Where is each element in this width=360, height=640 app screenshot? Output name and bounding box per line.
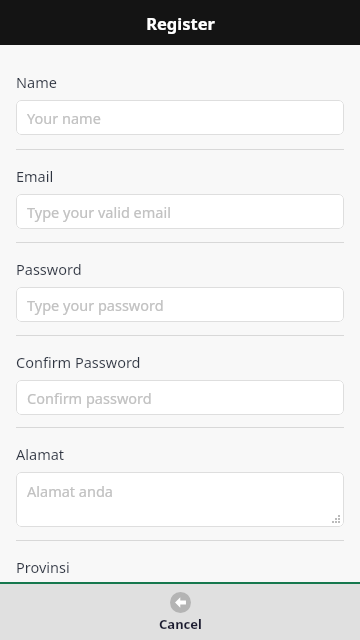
- button[interactable]: Your name: [16, 100, 344, 135]
- staticText: Password: [16, 259, 82, 279]
- staticText: Email: [16, 166, 54, 186]
- staticText: Name: [16, 72, 57, 92]
- staticText: Alamat anda: [27, 481, 113, 501]
- staticText: Alamat: [16, 444, 65, 464]
- staticText: Cancel: [159, 615, 202, 633]
- button[interactable]: Type your valid email: [16, 194, 344, 229]
- staticText: Type your password: [27, 295, 164, 315]
- staticText: Provinsi: [16, 557, 70, 577]
- staticText: Confirm Password: [16, 352, 141, 372]
- button[interactable]: Type your password: [16, 287, 344, 322]
- button[interactable]: [16, 585, 344, 620]
- button[interactable]: Cancel: [0, 584, 360, 640]
- staticText: Register: [146, 12, 215, 34]
- staticText: Type your valid email: [27, 202, 171, 222]
- button[interactable]: Alamat anda: [16, 472, 344, 527]
- staticText: Confirm password: [27, 388, 152, 408]
- staticText: Your name: [27, 108, 101, 128]
- button[interactable]: Confirm password: [16, 380, 344, 415]
